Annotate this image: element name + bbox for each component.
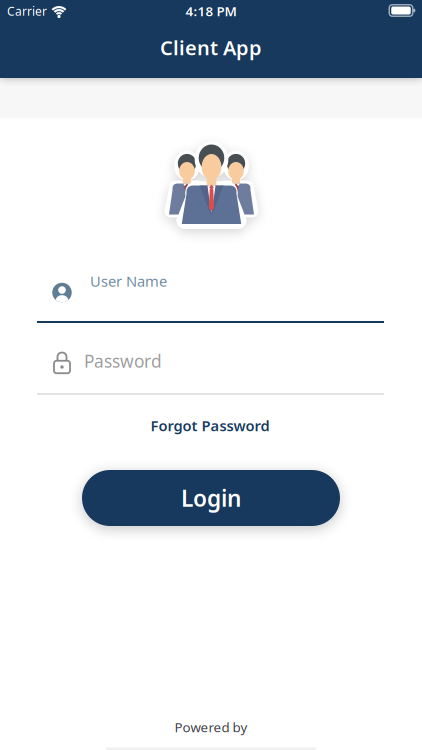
button[interactable]: Login <box>82 470 340 526</box>
staticText: User Name <box>90 271 167 291</box>
button[interactable]: Forgot Password <box>150 416 269 435</box>
staticText: Password <box>84 349 162 372</box>
staticText: Login <box>181 483 241 513</box>
staticText: Forgot Password <box>150 416 269 435</box>
staticText: 4:18 PM <box>185 2 236 20</box>
staticText: Client App <box>160 34 262 61</box>
staticText: Powered by <box>174 718 247 736</box>
staticText: Carrier <box>7 3 47 19</box>
